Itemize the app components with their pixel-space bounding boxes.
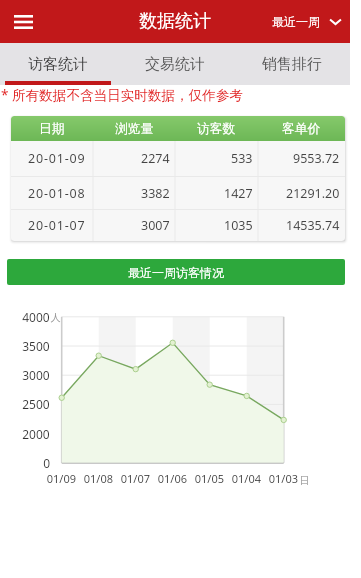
staticText: 20-01-09 bbox=[28, 150, 86, 167]
button[interactable]: Menu bbox=[6, 5, 40, 39]
staticText: 最近一周 bbox=[272, 14, 320, 29]
staticText: 2274 bbox=[141, 150, 170, 167]
button[interactable]: 访客统计 bbox=[0, 43, 116, 85]
button[interactable]: 最近一周访客情况 bbox=[7, 259, 345, 285]
staticText: 日期 bbox=[39, 121, 65, 137]
staticText: 1035 bbox=[224, 217, 253, 234]
staticText: * 所有数据不含当日实时数据，仅作参考 bbox=[1, 85, 244, 104]
staticText: 1427 bbox=[224, 185, 253, 202]
staticText: 3007 bbox=[141, 217, 170, 234]
staticText: 20-01-08 bbox=[28, 185, 86, 202]
staticText: 21291.20 bbox=[286, 185, 340, 202]
staticText: 20-01-07 bbox=[28, 217, 86, 234]
staticText: 访客数 bbox=[197, 121, 236, 137]
staticText: 最近一周访客情况 bbox=[128, 265, 224, 280]
staticText: 交易统计 bbox=[145, 55, 205, 74]
staticText: 数据统计 bbox=[139, 10, 211, 33]
button[interactable]: 销售排行 bbox=[233, 43, 350, 85]
staticText: 3382 bbox=[141, 185, 170, 202]
staticText: 533 bbox=[231, 150, 253, 167]
button[interactable]: 最近一周 bbox=[272, 14, 342, 29]
staticText: 浏览量 bbox=[115, 121, 154, 137]
button[interactable]: 交易统计 bbox=[116, 43, 233, 85]
staticText: 销售排行 bbox=[262, 55, 322, 74]
staticText: 14535.74 bbox=[286, 217, 340, 234]
staticText: 客单价 bbox=[282, 121, 321, 137]
staticText: 访客统计 bbox=[28, 55, 88, 74]
staticText: 9553.72 bbox=[293, 150, 340, 167]
